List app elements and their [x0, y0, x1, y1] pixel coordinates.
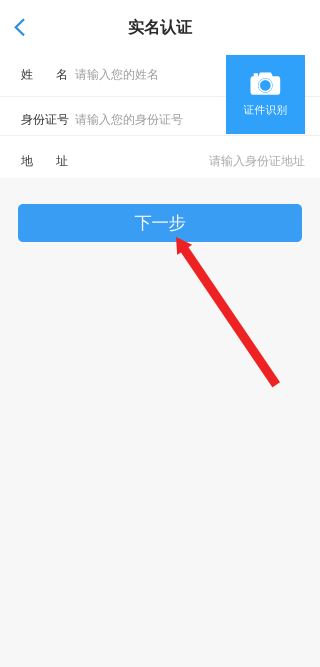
button[interactable]: 下一步 — [18, 204, 302, 242]
staticText: 证 — [45, 112, 57, 127]
staticText: 号 — [57, 112, 69, 127]
staticText: 下一步 — [134, 212, 185, 234]
staticText: 请输入身份证地址 — [209, 154, 305, 168]
staticText: 姓 — [21, 67, 33, 82]
staticText: 请输入您的姓名 — [75, 67, 159, 82]
staticText: 名 — [56, 67, 68, 82]
staticText: 地 — [21, 154, 33, 168]
staticText: 证件识别 — [243, 103, 287, 116]
staticText: 请输入您的身份证号 — [75, 112, 183, 127]
button[interactable]: 返回 — [0, 0, 40, 55]
staticText: 址 — [56, 154, 68, 168]
staticText: 身 — [21, 112, 33, 127]
button[interactable]: 证件识别 — [226, 55, 305, 134]
staticText: 实名认证 — [128, 18, 192, 37]
staticText: 份 — [33, 112, 45, 127]
